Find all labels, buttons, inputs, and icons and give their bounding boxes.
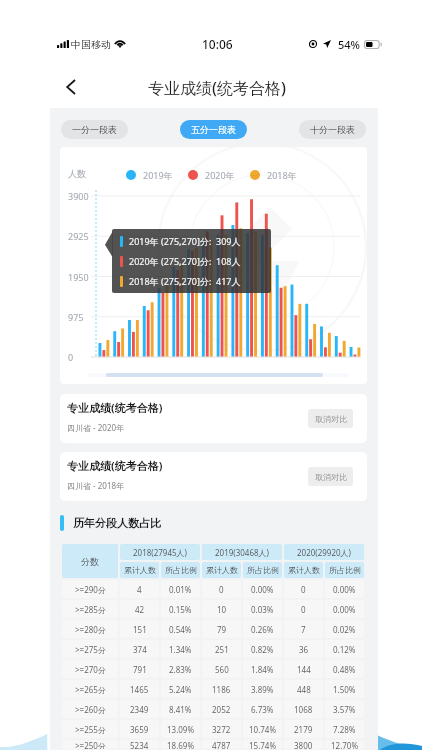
staticText: 0 bbox=[68, 351, 74, 363]
staticText: 1950 bbox=[68, 271, 89, 283]
staticText: 2179 bbox=[294, 724, 313, 735]
staticText: 374 bbox=[133, 644, 147, 655]
staticText: 2020(29920人) bbox=[297, 547, 351, 558]
button[interactable]: 五分一段表 bbox=[180, 120, 247, 139]
staticText: 0.54% bbox=[169, 624, 192, 635]
staticText: 中国移动 bbox=[71, 38, 111, 51]
staticText: >=290分 bbox=[75, 584, 106, 595]
staticText: 0 bbox=[219, 584, 224, 595]
staticText: 5234 bbox=[130, 740, 149, 749]
staticText: 7 bbox=[301, 624, 306, 635]
staticText: 0.15% bbox=[169, 604, 192, 615]
staticText: 0 bbox=[301, 604, 306, 615]
staticText: >=250分 bbox=[75, 740, 106, 749]
staticText: 五分一段表 bbox=[191, 124, 236, 135]
staticText: 12.70% bbox=[331, 740, 359, 749]
staticText: 专业成绩(统考合格) bbox=[148, 77, 286, 99]
staticText: 36 bbox=[299, 644, 309, 655]
staticText: 专业成绩(统考合格) bbox=[67, 458, 163, 473]
staticText: 0.01% bbox=[169, 584, 192, 595]
staticText: 10:06 bbox=[202, 36, 233, 52]
staticText: 560 bbox=[215, 664, 229, 675]
staticText: 取消对比 bbox=[315, 472, 347, 482]
staticText: 1.50% bbox=[333, 684, 356, 695]
staticText: 0.00% bbox=[251, 584, 274, 595]
staticText: 一分一段表 bbox=[72, 124, 117, 135]
button[interactable]: 专业成绩(统考合格) bbox=[60, 452, 367, 501]
staticText: 7.28% bbox=[333, 724, 356, 735]
staticText: 448 bbox=[297, 684, 311, 695]
staticText: >=285分 bbox=[75, 604, 106, 615]
staticText: 1.84% bbox=[251, 664, 274, 675]
staticText: 0.00% bbox=[333, 584, 356, 595]
button[interactable]: 专业成绩(统考合格) bbox=[60, 394, 367, 443]
staticText: 15.74% bbox=[249, 740, 277, 749]
staticText: 四川省 - 2018年 bbox=[67, 480, 125, 491]
staticText: 1186 bbox=[212, 684, 231, 695]
staticText: 251 bbox=[215, 644, 229, 655]
staticText: 2.83% bbox=[169, 664, 192, 675]
staticText: 79 bbox=[217, 624, 227, 635]
staticText: 分数 bbox=[81, 556, 99, 567]
button[interactable]: 取消对比 bbox=[308, 409, 353, 428]
staticText: 2018年 bbox=[267, 169, 297, 181]
button[interactable]: 十分一段表 bbox=[299, 120, 366, 139]
staticText: >=275分 bbox=[75, 644, 106, 655]
staticText: 10.74% bbox=[249, 724, 277, 735]
button[interactable]: 取消对比 bbox=[308, 467, 353, 486]
staticText: 所占比例 bbox=[329, 565, 361, 575]
staticText: 4 bbox=[137, 584, 142, 595]
staticText: >=265分 bbox=[75, 684, 106, 695]
button[interactable]: Back bbox=[57, 73, 85, 101]
staticText: 144 bbox=[297, 664, 311, 675]
staticText: 1.34% bbox=[169, 644, 192, 655]
staticText: 四川省 - 2020年 bbox=[67, 422, 125, 433]
staticText: >=260分 bbox=[75, 704, 106, 715]
staticText: 人数 bbox=[68, 168, 86, 179]
staticText: 2020年 bbox=[205, 169, 235, 181]
staticText: 0.00% bbox=[333, 604, 356, 615]
staticText: 2020年 (275,270]分: 108人 bbox=[129, 255, 241, 267]
staticText: 1068 bbox=[294, 704, 313, 715]
staticText: 2052 bbox=[212, 704, 231, 715]
staticText: 151 bbox=[133, 624, 147, 635]
staticText: 3272 bbox=[212, 724, 231, 735]
staticText: 3900 bbox=[68, 190, 89, 202]
button[interactable]: 一分一段表 bbox=[61, 120, 128, 139]
staticText: 取消对比 bbox=[315, 414, 347, 424]
staticText: 3.89% bbox=[251, 684, 274, 695]
staticText: 13.09% bbox=[167, 724, 195, 735]
staticText: 十分一段表 bbox=[310, 124, 355, 135]
staticText: 0.02% bbox=[333, 624, 356, 635]
staticText: 975 bbox=[68, 311, 84, 323]
staticText: 累计人数 bbox=[288, 565, 320, 575]
staticText: 0 bbox=[301, 584, 306, 595]
staticText: 累计人数 bbox=[124, 565, 156, 575]
staticText: 累计人数 bbox=[206, 565, 238, 575]
staticText: 历年分段人数占比 bbox=[73, 516, 161, 530]
staticText: 专业成绩(统考合格) bbox=[67, 400, 163, 415]
staticText: 5.24% bbox=[169, 684, 192, 695]
staticText: 54% bbox=[338, 37, 360, 52]
staticText: 42 bbox=[135, 604, 145, 615]
staticText: >=270分 bbox=[75, 664, 106, 675]
staticText: 2018年 (275,270]分: 417人 bbox=[129, 275, 241, 287]
staticText: 0.12% bbox=[333, 644, 356, 655]
staticText: 所占比例 bbox=[165, 565, 197, 575]
staticText: 6.73% bbox=[251, 704, 274, 715]
staticText: 2019年 (275,270]分: 309人 bbox=[129, 235, 241, 247]
staticText: 2018(27945人) bbox=[133, 547, 187, 558]
staticText: 10 bbox=[217, 604, 227, 615]
staticText: >=255分 bbox=[75, 724, 106, 735]
staticText: 3.57% bbox=[333, 704, 356, 715]
staticText: 0.48% bbox=[333, 664, 356, 675]
staticText: >=280分 bbox=[75, 624, 106, 635]
staticText: 1465 bbox=[130, 684, 149, 695]
staticText: 2019年 bbox=[143, 169, 173, 181]
staticText: 0.26% bbox=[251, 624, 274, 635]
staticText: 0.03% bbox=[251, 604, 274, 615]
staticText: 3659 bbox=[130, 724, 149, 735]
staticText: 18.69% bbox=[167, 740, 195, 749]
staticText: 2019(30468人) bbox=[215, 547, 269, 558]
staticText: 0.82% bbox=[251, 644, 274, 655]
